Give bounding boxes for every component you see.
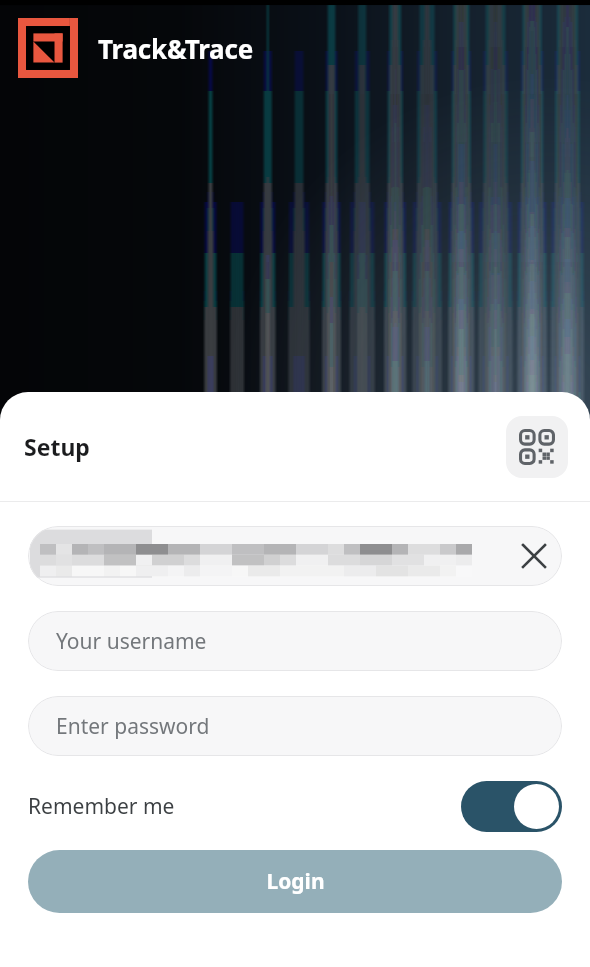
button[interactable]: Clear	[28, 526, 562, 586]
staticText: Your username	[56, 627, 207, 656]
staticText: Enter password	[56, 712, 210, 741]
staticText: Remember me	[28, 792, 175, 821]
button[interactable]: Your username	[28, 611, 562, 671]
button[interactable]: Login	[28, 850, 562, 913]
button[interactable]: Clear	[506, 528, 562, 584]
staticText: Login	[266, 867, 325, 896]
button[interactable]: Remember me	[28, 778, 562, 834]
button[interactable]: Enter password	[28, 696, 562, 756]
staticText: Setup	[24, 431, 90, 462]
button[interactable]: Scan QR code	[506, 416, 568, 478]
staticText: Track&Trace	[98, 31, 253, 66]
